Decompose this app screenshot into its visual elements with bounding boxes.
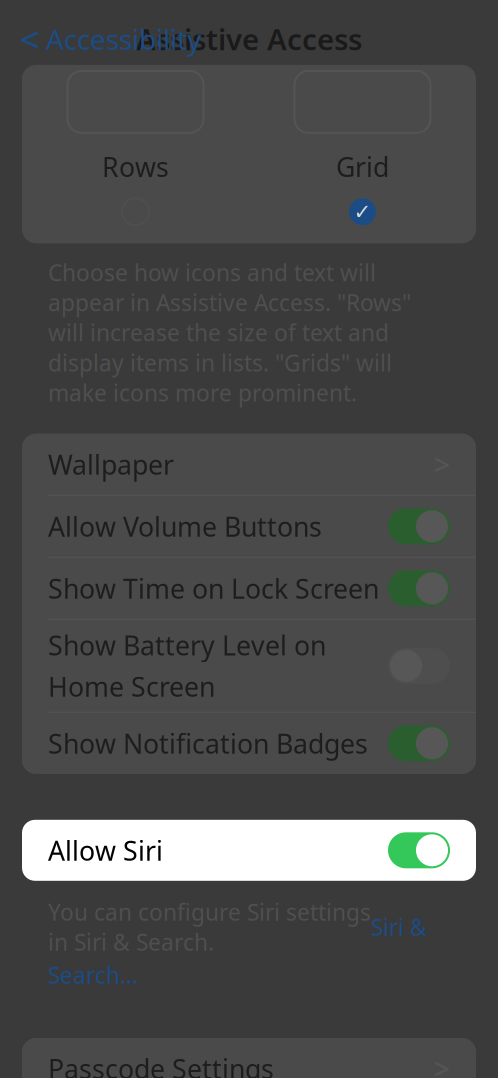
staticText: Show Notification Badges: [48, 726, 368, 761]
staticText: Passcode Settings: [48, 1051, 274, 1078]
button[interactable]: Wallpaper: [22, 434, 476, 495]
staticText: Allow Volume Buttons: [48, 509, 322, 544]
staticText: <: [20, 16, 40, 62]
button[interactable]: Passcode Settings: [22, 1038, 476, 1078]
staticText: Search...: [48, 960, 138, 990]
staticText: You can configure Siri settings in Siri …: [48, 897, 371, 957]
staticText: Show Time on Lock Screen: [48, 571, 379, 606]
staticText: Accessibility: [46, 20, 201, 57]
button[interactable]: Show Battery Level on: [22, 620, 476, 712]
staticText: Choose how icons and text will appear in…: [48, 257, 411, 408]
staticText: Grid: [336, 149, 389, 184]
button[interactable]: Allow Siri: [22, 820, 476, 881]
staticText: Assistive Access: [136, 19, 362, 58]
staticText: Home Screen: [48, 669, 215, 704]
button[interactable]: Show Time on Lock Screen: [22, 558, 476, 619]
button[interactable]: Rows: [22, 71, 249, 225]
staticText: Show Battery Level on: [48, 627, 326, 663]
staticText: Siri &: [371, 912, 427, 942]
button[interactable]: Show Notification Badges: [22, 713, 476, 774]
button[interactable]: Grid: [249, 71, 476, 225]
button[interactable]: Siri &: [371, 912, 427, 942]
staticText: ✓: [353, 200, 371, 224]
staticText: Wallpaper: [48, 447, 174, 482]
staticText: Allow Siri: [48, 833, 163, 868]
button[interactable]: <: [6, 17, 215, 61]
button[interactable]: Allow Volume Buttons: [22, 496, 476, 557]
staticText: >: [434, 1050, 450, 1078]
staticText: Rows: [102, 149, 169, 184]
button[interactable]: Search...: [48, 960, 138, 990]
